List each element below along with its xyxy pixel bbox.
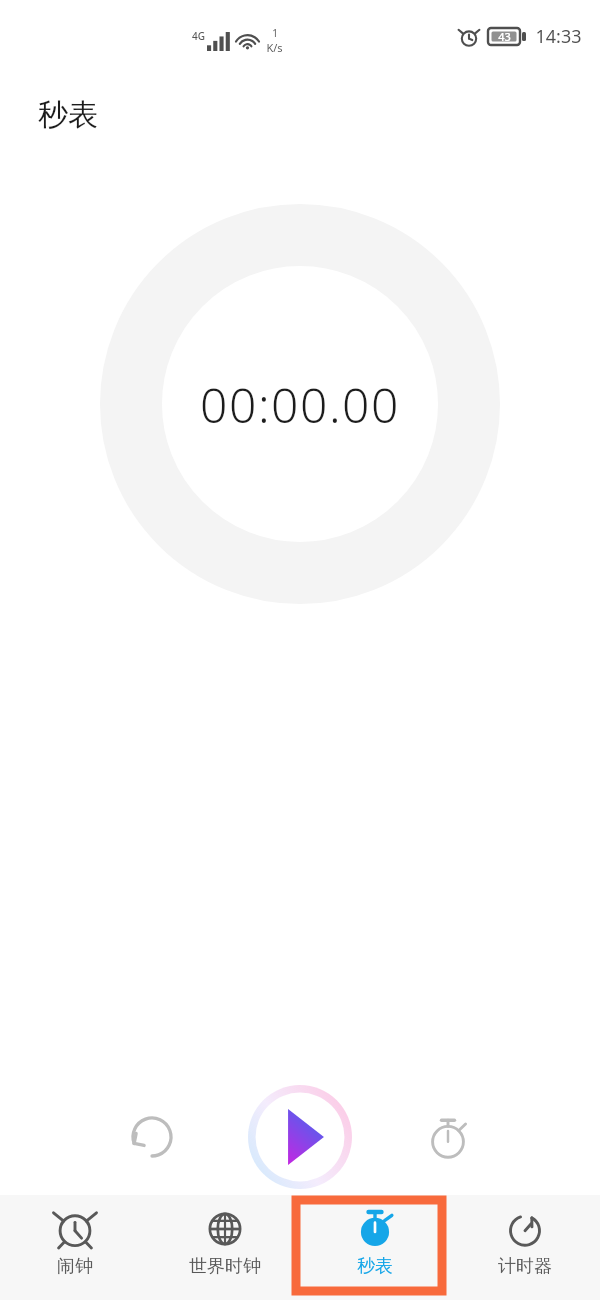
staticText: 秒表 <box>38 96 98 134</box>
button[interactable]: Lap <box>414 1103 482 1171</box>
button[interactable]: Start <box>248 1085 352 1189</box>
staticText: K/s <box>266 40 283 55</box>
staticText: 闹钟 <box>57 1255 93 1278</box>
staticText: 14:33 <box>535 24 582 49</box>
button[interactable]: 计时器 <box>450 1195 600 1300</box>
button[interactable]: 闹钟 <box>0 1195 150 1300</box>
staticText: 1 <box>272 26 278 40</box>
staticText: 00:00.00 <box>200 372 400 437</box>
staticText: 世界时钟 <box>189 1255 261 1278</box>
button[interactable]: 秒表 <box>300 1195 450 1300</box>
staticText: 43 <box>498 29 511 44</box>
staticText: 秒表 <box>357 1255 393 1278</box>
button[interactable]: Reset <box>118 1103 186 1171</box>
staticText: 计时器 <box>498 1255 552 1278</box>
button[interactable]: 世界时钟 <box>150 1195 300 1300</box>
staticText: 4G <box>192 29 205 43</box>
